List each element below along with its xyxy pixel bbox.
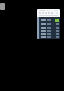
button[interactable]: Status OK: [41, 18, 59, 22]
button[interactable]: [41, 29, 59, 32]
button[interactable]: [41, 26, 59, 29]
button[interactable]: [41, 35, 59, 38]
button[interactable]: [41, 32, 59, 35]
button[interactable]: [41, 22, 59, 26]
button[interactable]: Tool 0: [37, 9, 60, 39]
button[interactable]: Menu: [0, 3, 5, 10]
